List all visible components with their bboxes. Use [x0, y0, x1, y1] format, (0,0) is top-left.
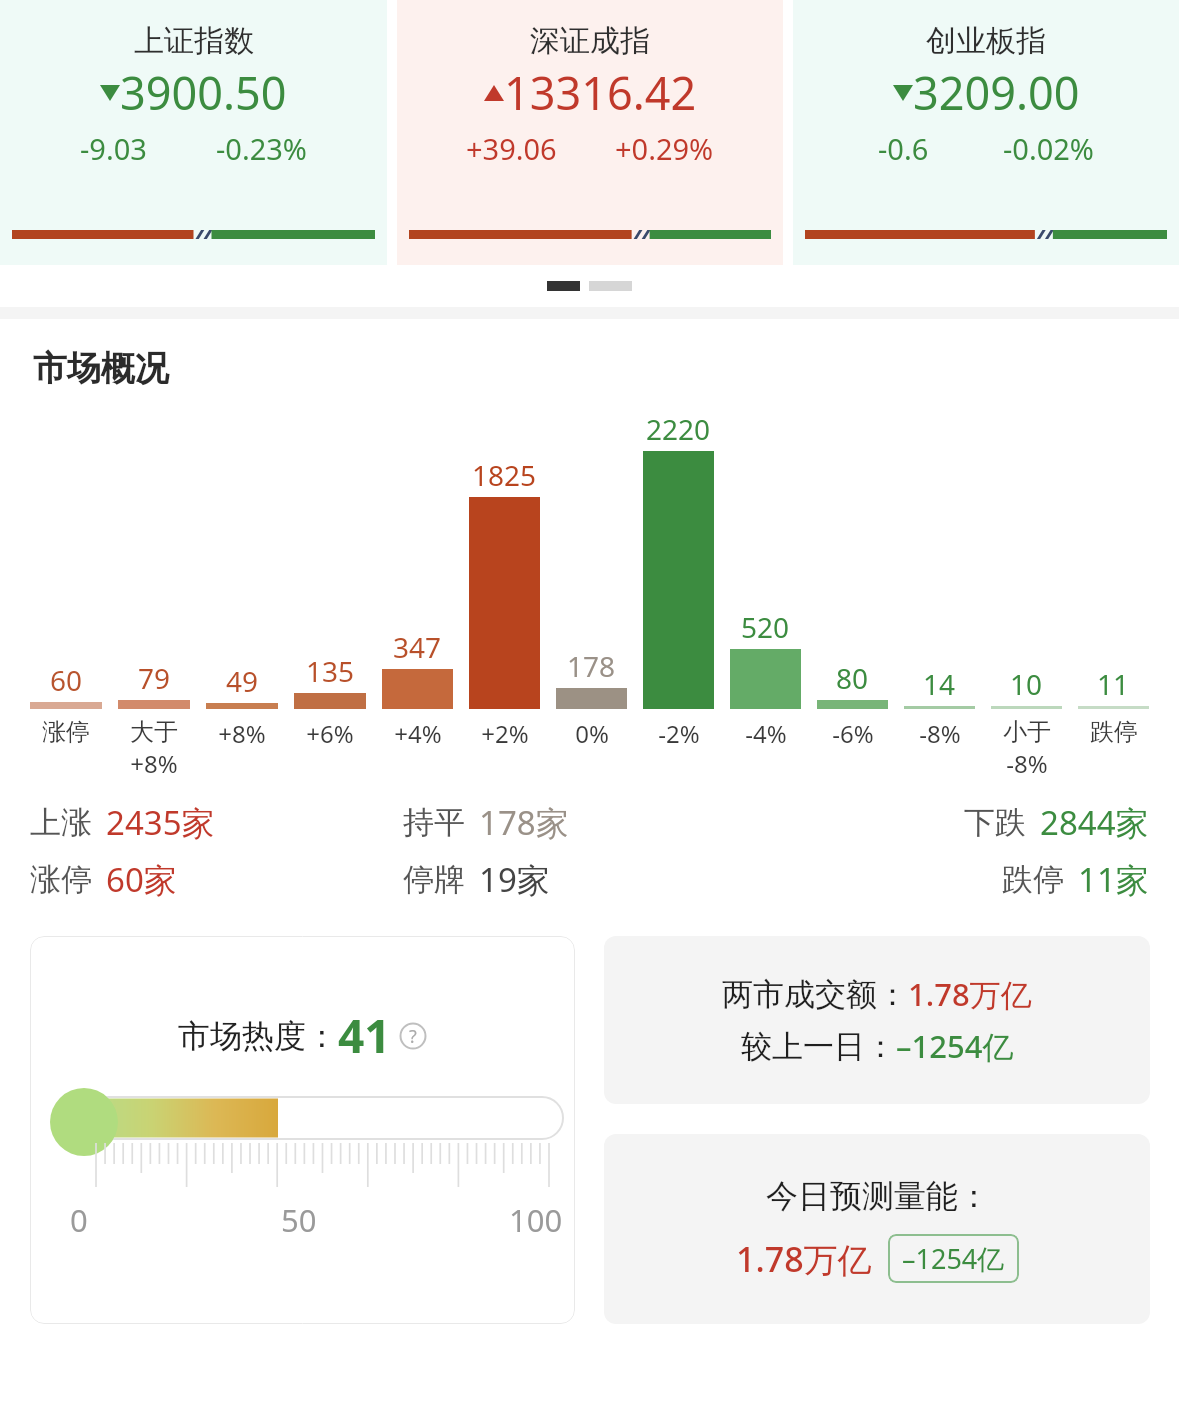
button[interactable]: 市场热度：: [30, 936, 575, 1324]
staticText: -9.03: [80, 129, 147, 168]
staticText: +39.06: [466, 129, 557, 168]
staticText: 大于: [130, 717, 178, 747]
staticText: 1.78万亿: [736, 1236, 872, 1282]
staticText: 19家: [479, 857, 550, 902]
staticText: 50: [281, 1199, 317, 1241]
button[interactable]: 深证成指: [397, 0, 783, 265]
staticText: –1254亿: [902, 1240, 1005, 1277]
staticText: 0%: [575, 717, 609, 750]
staticText: 上涨: [30, 803, 92, 842]
staticText: 今日预测量能：: [766, 1176, 990, 1216]
staticText: 100: [509, 1199, 563, 1241]
staticText: +0.29%: [615, 129, 714, 168]
staticText: 14: [923, 665, 956, 703]
staticText: 10: [1010, 665, 1043, 703]
staticText: 跌停: [1002, 860, 1064, 899]
staticText: 3209.00: [913, 62, 1080, 123]
staticText: +4%: [394, 717, 442, 750]
staticText: 下跌: [964, 803, 1026, 842]
staticText: 市场热度：: [178, 1016, 338, 1056]
staticText: 520: [741, 608, 790, 646]
button[interactable]: 上证指数: [0, 0, 387, 265]
staticText: 市场概况: [33, 347, 169, 390]
staticText: 上证指数: [134, 22, 254, 60]
staticText: 0: [70, 1199, 88, 1241]
staticText: 80: [836, 659, 869, 697]
button[interactable]: 市场热度说明: [399, 1022, 427, 1050]
staticText: +8%: [130, 747, 178, 780]
staticText: 60家: [106, 857, 177, 902]
staticText: 两市成交额：: [722, 975, 908, 1014]
staticText: 停牌: [403, 860, 465, 899]
staticText: -4%: [745, 717, 787, 750]
staticText: 创业板指: [926, 22, 1046, 60]
staticText: 41: [338, 1004, 391, 1067]
staticText: ?: [409, 1024, 417, 1049]
button[interactable]: 今日预测量能：: [604, 1134, 1150, 1324]
staticText: 178家: [479, 800, 569, 845]
staticText: 小于: [1003, 717, 1051, 747]
staticText: 178: [567, 647, 616, 685]
staticText: 11家: [1078, 857, 1149, 902]
staticText: -2%: [658, 717, 700, 750]
staticText: 1.78万亿: [908, 973, 1032, 1015]
staticText: 2435家: [106, 800, 215, 845]
staticText: 较上一日：: [741, 1027, 896, 1066]
button[interactable]: 两市成交额：: [604, 936, 1150, 1104]
staticText: 深证成指: [530, 22, 650, 60]
button[interactable]: 创业板指: [793, 0, 1179, 265]
staticText: 60: [50, 661, 83, 699]
staticText: 79: [138, 659, 171, 697]
staticText: 3900.50: [120, 62, 287, 123]
staticText: –1254亿: [896, 1025, 1014, 1067]
staticText: +6%: [306, 717, 354, 750]
staticText: 1825: [472, 456, 537, 494]
staticText: 涨停: [42, 717, 90, 747]
staticText: 49: [226, 662, 259, 700]
staticText: 135: [306, 652, 355, 690]
staticText: -6%: [832, 717, 874, 750]
staticText: 11: [1097, 665, 1130, 703]
staticText: 涨停: [30, 860, 92, 899]
staticText: 跌停: [1090, 717, 1138, 747]
staticText: -0.02%: [1003, 129, 1094, 168]
staticText: 持平: [403, 803, 465, 842]
staticText: +8%: [218, 717, 266, 750]
staticText: 13316.42: [504, 62, 697, 123]
staticText: 2220: [646, 410, 711, 448]
staticText: -0.6: [878, 129, 929, 168]
staticText: -8%: [919, 717, 961, 750]
staticText: -0.23%: [216, 129, 307, 168]
staticText: +2%: [481, 717, 529, 750]
staticText: -8%: [1006, 747, 1048, 780]
staticText: 347: [393, 628, 442, 666]
staticText: 2844家: [1040, 800, 1149, 845]
